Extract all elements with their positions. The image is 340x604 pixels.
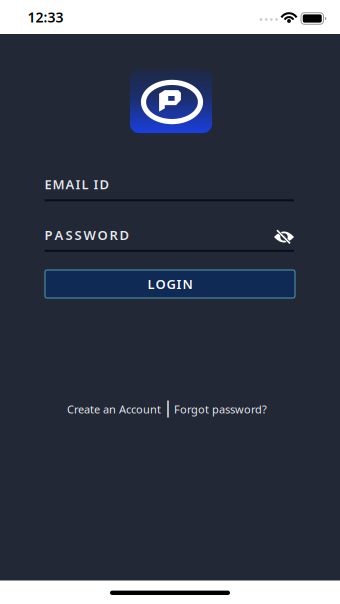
button[interactable]: Show password	[272, 225, 296, 249]
staticText: 12:33	[27, 8, 63, 26]
staticText: P A S S W O R D	[44, 226, 129, 244]
button[interactable]: Password	[44, 225, 294, 253]
staticText: L O G I N	[147, 275, 192, 293]
button[interactable]: Email ID	[44, 174, 294, 202]
button[interactable]: Create an Account	[31, 399, 161, 419]
staticText: E M A I L I D	[44, 176, 109, 193]
button[interactable]: Forgot password?	[174, 399, 304, 419]
staticText: Forgot password?	[174, 402, 267, 417]
button[interactable]: L O G I N	[45, 270, 295, 298]
staticText: Create an Account	[67, 402, 161, 417]
